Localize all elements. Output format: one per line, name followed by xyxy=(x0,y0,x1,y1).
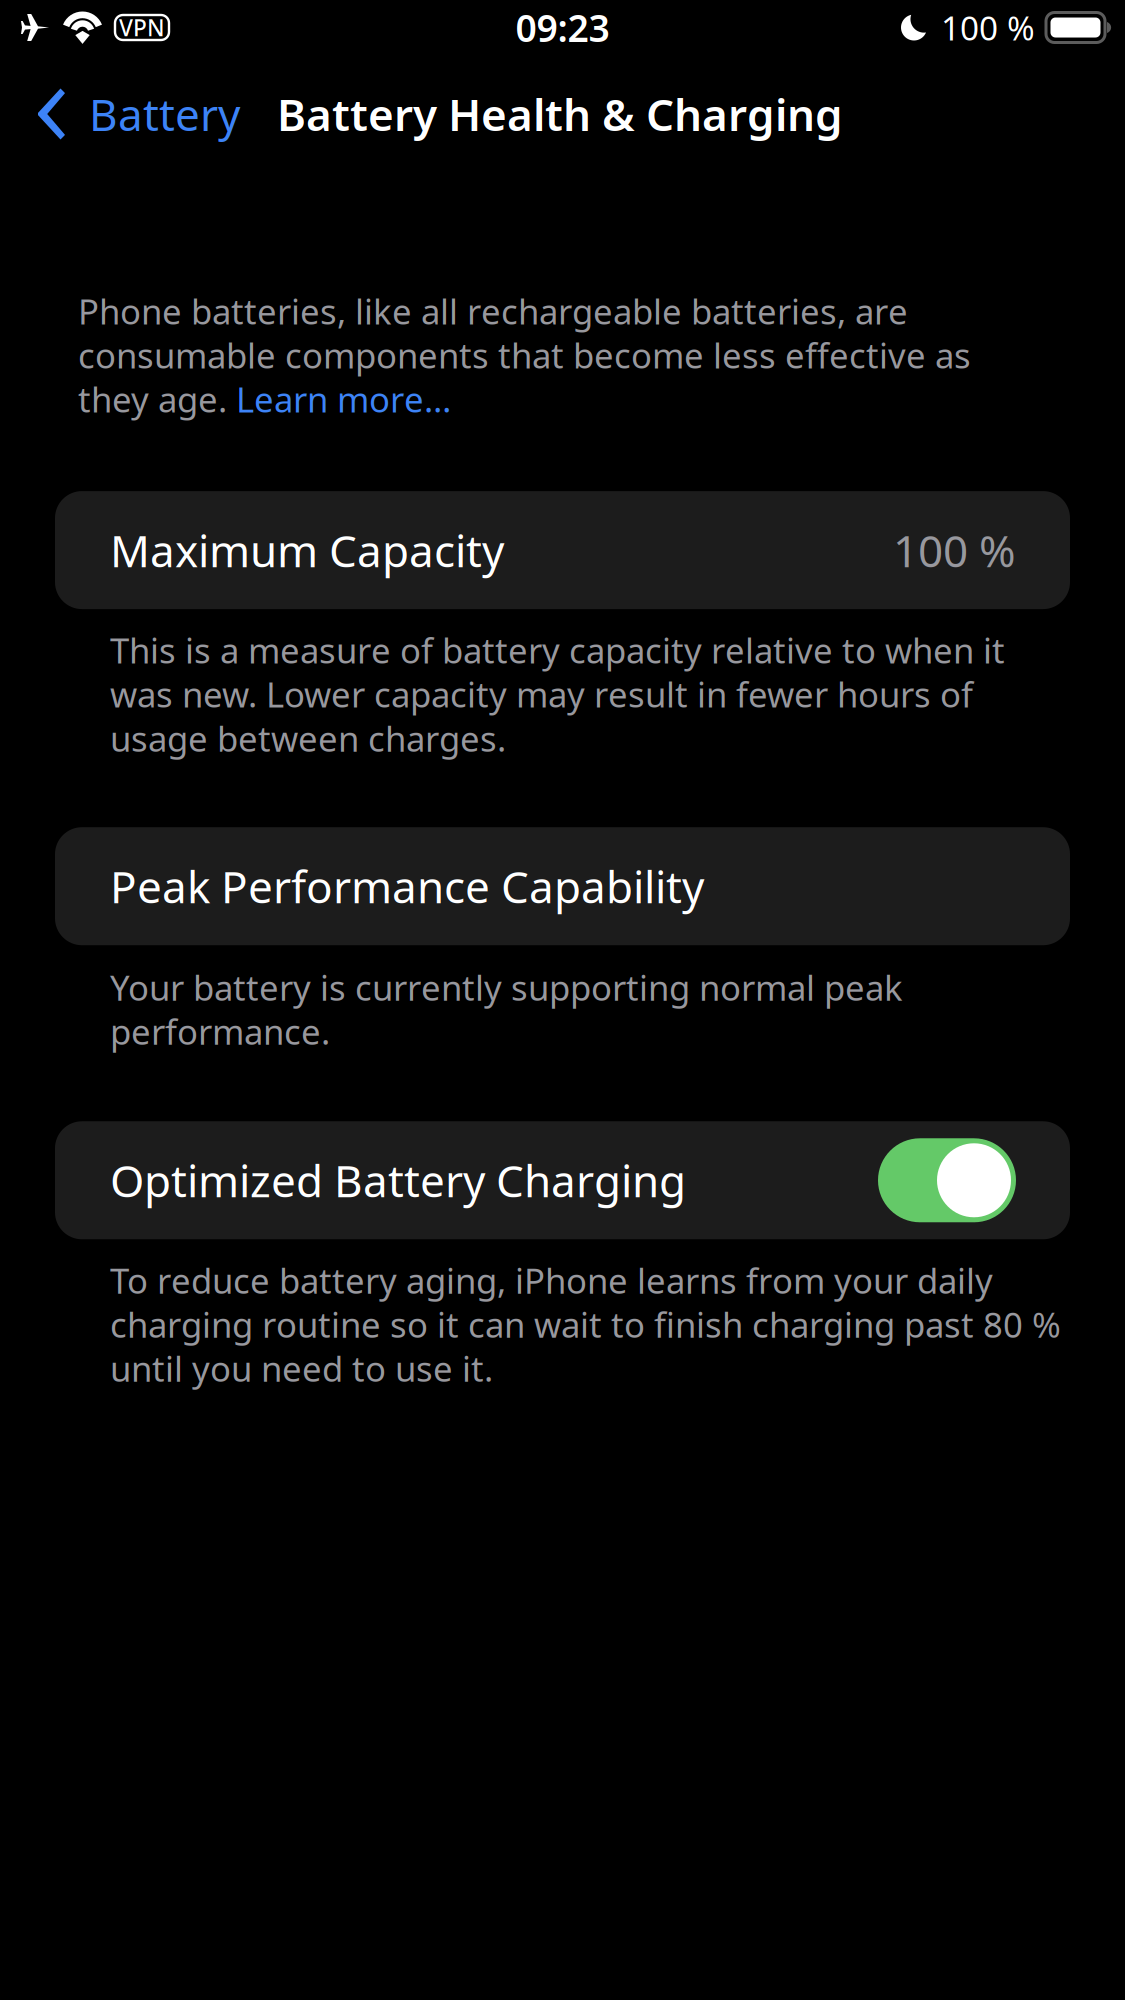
staticText: Optimized Battery Charging xyxy=(110,1151,686,1209)
button[interactable]: Optimized Battery Charging xyxy=(55,1121,1070,1239)
staticText: 09:23 xyxy=(515,3,609,52)
staticText: VPN xyxy=(119,12,165,42)
staticText: Learn more… xyxy=(236,376,451,422)
staticText: 100 % xyxy=(941,5,1035,50)
staticText: Peak Performance Capability xyxy=(110,857,704,915)
button[interactable]: Maximum Capacity xyxy=(55,491,1070,609)
staticText: This is a measure of battery capacity re… xyxy=(110,627,1005,761)
staticText: To reduce battery aging, iPhone learns f… xyxy=(110,1257,1061,1391)
staticText: they age. xyxy=(78,376,236,422)
staticText: Battery Health & Charging xyxy=(277,85,843,143)
staticText: Phone batteries, like all rechargeable b… xyxy=(78,288,908,334)
staticText: Your battery is currently supporting nor… xyxy=(110,964,903,1054)
button[interactable]: Learn more… xyxy=(236,376,451,422)
staticText: Maximum Capacity xyxy=(110,521,504,579)
button[interactable]: Battery xyxy=(0,55,252,173)
button[interactable]: Peak Performance Capability xyxy=(55,827,1070,945)
staticText: Battery xyxy=(89,85,240,143)
staticText: consumable components that become less e… xyxy=(78,332,971,378)
staticText: 100 % xyxy=(893,521,1016,579)
